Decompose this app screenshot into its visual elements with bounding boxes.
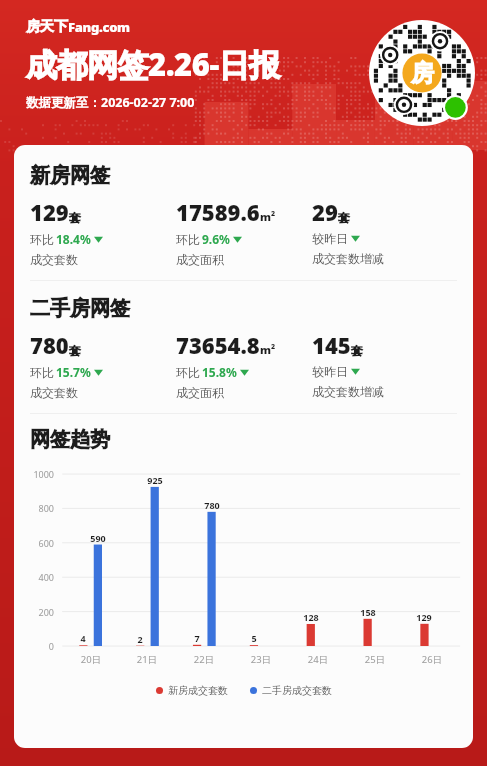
staticText: m — [260, 209, 271, 224]
staticText: 房天下 — [26, 18, 68, 36]
staticText: 套 — [69, 210, 81, 225]
staticText: 590 — [78, 532, 118, 544]
button[interactable]: 二手房网签 — [14, 296, 473, 400]
staticText: 158 — [348, 606, 388, 618]
staticText: 数据更新至：2026-02-27 7:00 — [26, 94, 195, 111]
staticText: 套 — [351, 343, 363, 358]
staticText: 二手房成交套数 — [262, 684, 332, 697]
staticText: 5 — [234, 632, 274, 644]
staticText: 925 — [135, 474, 175, 486]
staticText: 800 — [14, 502, 54, 514]
staticText: 21日 — [125, 653, 169, 666]
staticText: 成交套数 — [30, 252, 78, 267]
staticText: 套 — [69, 343, 81, 358]
button[interactable]: 扫描二维码关注 — [369, 20, 475, 126]
staticText: 二手房网签 — [30, 296, 130, 321]
staticText: 套 — [338, 210, 350, 225]
staticText: 9.6% — [202, 231, 230, 247]
button[interactable]: 新房网签 — [14, 163, 473, 267]
staticText: 780 — [192, 499, 232, 511]
button[interactable]: 二手房成交套数 — [250, 684, 332, 697]
staticText: 环比 — [30, 232, 54, 247]
staticText: 2 — [120, 633, 160, 645]
staticText: 145 — [312, 330, 351, 360]
staticText: 200 — [14, 606, 54, 618]
staticText: 环比 — [176, 365, 200, 380]
staticText: 成交套数增减 — [312, 251, 384, 266]
staticText: 18.4% — [56, 231, 91, 247]
staticText: 129 — [404, 611, 444, 623]
staticText: 环比 — [30, 365, 54, 380]
staticText: 17589.6 — [176, 197, 260, 227]
staticText: m — [260, 342, 271, 357]
staticText: 成交套数增减 — [312, 384, 384, 399]
button[interactable]: 新房成交套数 — [156, 684, 228, 697]
staticText: 7 — [177, 632, 217, 644]
staticText: 成交套数 — [30, 385, 78, 400]
staticText: 15.8% — [202, 364, 237, 380]
staticText: 129 — [30, 197, 69, 227]
staticText: 2 — [271, 209, 276, 219]
staticText: 25日 — [353, 653, 397, 666]
staticText: 26日 — [410, 653, 454, 666]
staticText: 新房成交套数 — [168, 684, 228, 697]
staticText: 成交面积 — [176, 385, 224, 400]
staticText: 780 — [30, 330, 69, 360]
staticText: 29 — [312, 197, 338, 227]
staticText: 2 — [271, 342, 276, 352]
staticText: 15.7% — [56, 364, 91, 380]
staticText: 73654.8 — [176, 330, 260, 360]
staticText: 较昨日 — [312, 231, 348, 246]
staticText: Fang.com — [68, 18, 130, 36]
staticText: 20日 — [69, 653, 113, 666]
staticText: 环比 — [176, 232, 200, 247]
staticText: 1000 — [14, 468, 54, 480]
staticText: 网签趋势 — [30, 427, 110, 452]
staticText: 128 — [291, 611, 331, 623]
staticText: 0 — [14, 640, 54, 652]
staticText: 成都网签2.26-日报 — [26, 43, 280, 85]
staticText: 22日 — [182, 653, 226, 666]
staticText: 房 — [411, 59, 434, 88]
staticText: 24日 — [296, 653, 340, 666]
staticText: 400 — [14, 571, 54, 583]
staticText: 新房网签 — [30, 163, 110, 188]
staticText: 4 — [63, 632, 103, 644]
staticText: 23日 — [239, 653, 283, 666]
staticText: 成交面积 — [176, 252, 224, 267]
staticText: 600 — [14, 537, 54, 549]
staticText: 较昨日 — [312, 364, 348, 379]
